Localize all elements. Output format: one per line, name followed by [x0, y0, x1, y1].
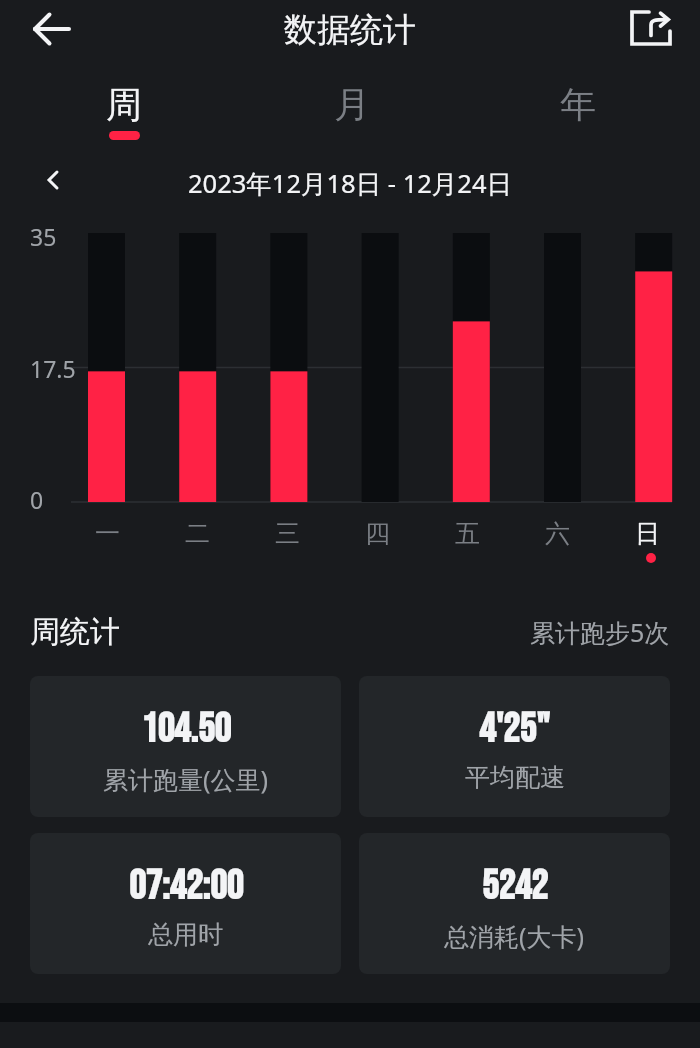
button[interactable]: 5242 [359, 833, 670, 974]
staticText: 五 [455, 518, 480, 549]
staticText: 六 [545, 518, 570, 549]
staticText: 2023年12月18日 - 12月24日 [188, 166, 513, 201]
staticText: 累计跑量(公里) [103, 762, 269, 796]
button[interactable]: 周 [0, 74, 234, 144]
staticText: 月 [334, 82, 370, 127]
staticText: 日 [635, 518, 660, 549]
button[interactable]: Previous week [26, 158, 76, 208]
staticText: 年 [560, 82, 596, 127]
staticText: 5242 [482, 862, 548, 911]
staticText: 数据统计 [284, 9, 416, 51]
staticText: 三 [275, 518, 300, 549]
staticText: 二 [185, 518, 210, 549]
button[interactable]: Share [622, 4, 676, 54]
staticText: 07:42:00 [129, 862, 243, 911]
button[interactable]: Back [26, 3, 78, 55]
staticText: 四 [365, 518, 390, 549]
staticText: 104.50 [141, 705, 231, 754]
staticText: 总消耗(大卡) [444, 919, 585, 953]
button[interactable]: 104.50 [30, 676, 341, 817]
staticText: 总用时 [148, 919, 223, 950]
staticText: 周统计 [30, 613, 120, 651]
staticText: 平均配速 [465, 762, 565, 793]
staticText: 0 [30, 484, 44, 515]
staticText: 17.5 [30, 353, 76, 384]
button[interactable]: 年 [467, 74, 700, 144]
staticText: 一 [95, 518, 120, 549]
staticText: 累计跑步5次 [530, 615, 670, 649]
staticText: 周 [106, 82, 142, 127]
button[interactable]: 4'25" [359, 676, 670, 817]
button[interactable]: 07:42:00 [30, 833, 341, 974]
button[interactable]: 月 [234, 74, 467, 144]
staticText: 35 [30, 221, 57, 252]
staticText: 4'25" [479, 705, 550, 754]
